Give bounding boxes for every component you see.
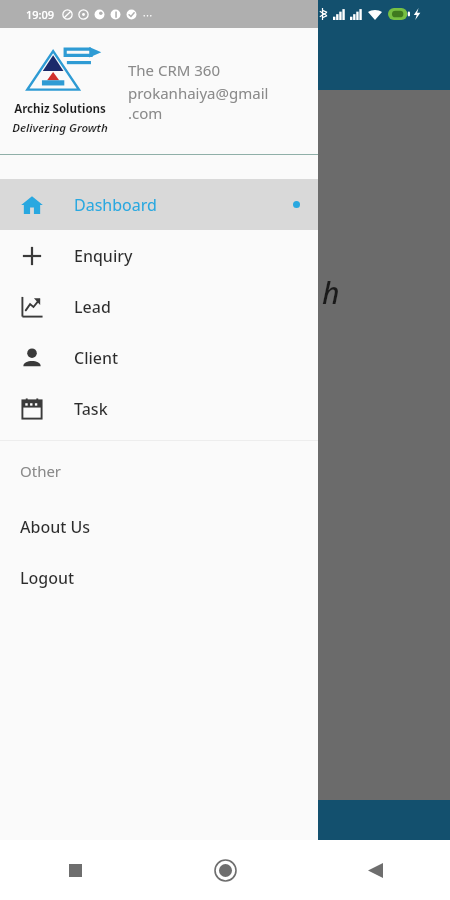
staticText: prokanhaiya@gmail .com (128, 83, 269, 123)
button[interactable]: Dashboard (0, 179, 318, 230)
button[interactable]: Back (300, 840, 450, 900)
button[interactable]: Home (150, 840, 300, 900)
staticText: About Us (20, 516, 91, 538)
button[interactable]: Lead (0, 281, 318, 332)
staticText: Archiz Solutions (14, 101, 106, 117)
staticText: Lead (74, 296, 111, 318)
button[interactable]: Client (0, 332, 318, 383)
staticText: Client (74, 347, 119, 369)
staticText: Task (74, 398, 108, 420)
staticText: Enquiry (74, 245, 133, 267)
staticText: h (322, 272, 340, 313)
button[interactable]: Task (0, 383, 318, 434)
staticText: Logout (20, 567, 75, 589)
button[interactable]: About Us (0, 501, 318, 552)
staticText: 19:09 (26, 7, 55, 22)
button[interactable]: Enquiry (0, 230, 318, 281)
staticText: Dashboard (74, 194, 157, 216)
staticText: Delivering Growth (12, 120, 108, 136)
button[interactable]: Recent apps (0, 840, 150, 900)
staticText: The CRM 360 (128, 60, 221, 80)
staticText: Other (20, 461, 62, 481)
button[interactable]: Logout (0, 552, 318, 603)
